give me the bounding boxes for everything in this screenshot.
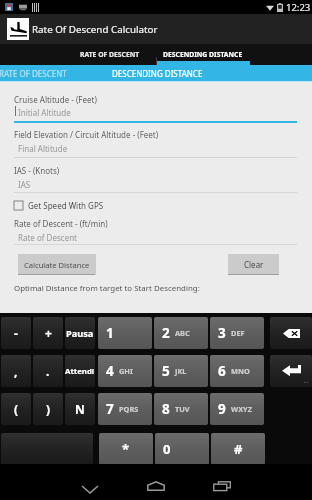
staticText: MNO bbox=[231, 366, 250, 376]
staticText: RATE OF DESCENT bbox=[80, 50, 140, 59]
staticText: Rate Of Descend Calculator bbox=[32, 23, 158, 36]
button[interactable] bbox=[14, 140, 297, 159]
staticText: # bbox=[234, 440, 243, 458]
staticText: * bbox=[122, 440, 130, 458]
button[interactable]: DESCENDING DISTANCE bbox=[112, 68, 203, 79]
button[interactable]: RATE OF DESCENT bbox=[63, 44, 156, 65]
staticText: Calculate Distance bbox=[24, 260, 90, 270]
staticText: 12:23 bbox=[286, 1, 311, 14]
staticText: ABC bbox=[175, 328, 190, 338]
staticText: TUV bbox=[175, 404, 190, 414]
staticText: 5 bbox=[162, 362, 170, 380]
staticText: Pausa bbox=[66, 327, 94, 340]
button[interactable]: 7 bbox=[98, 393, 152, 425]
button[interactable]: Pausa bbox=[65, 317, 95, 349]
button[interactable]: N bbox=[65, 393, 95, 425]
button[interactable]: Attendi bbox=[65, 355, 95, 387]
staticText: - bbox=[14, 325, 18, 341]
staticText: Optimal Distance from target to Start De… bbox=[14, 283, 200, 294]
staticText: Rate of Descent bbox=[18, 232, 77, 243]
button[interactable]: 1 bbox=[98, 317, 152, 349]
staticText: PQRS bbox=[119, 404, 139, 414]
button[interactable]: ( bbox=[1, 393, 31, 425]
staticText: 7 bbox=[106, 400, 114, 418]
button[interactable]: 8 bbox=[154, 393, 208, 425]
staticText: Initial Altitude bbox=[18, 107, 71, 118]
staticText: + bbox=[45, 325, 52, 341]
button[interactable]: Calculate Distance bbox=[18, 254, 96, 275]
staticText: DEF bbox=[231, 328, 245, 338]
button[interactable]: Symbols bbox=[1, 433, 93, 465]
staticText: 9 bbox=[218, 400, 226, 418]
staticText: 0 bbox=[163, 440, 171, 458]
button[interactable]: Get Speed With GPS bbox=[14, 199, 104, 211]
staticText: JKL bbox=[175, 366, 187, 376]
button[interactable]: , bbox=[1, 355, 31, 387]
staticText: GHI bbox=[119, 366, 133, 376]
staticText: Field Elevation / Circuit Altitude - (Fe… bbox=[14, 129, 159, 140]
button[interactable]: Home bbox=[138, 464, 174, 500]
button[interactable]: RATE OF DESCENT bbox=[0, 68, 67, 79]
button[interactable]: Backspace bbox=[270, 317, 312, 349]
staticText: . bbox=[46, 363, 50, 379]
button[interactable]: Hide keyboard bbox=[72, 464, 108, 500]
staticText: ( bbox=[14, 401, 19, 417]
button[interactable]: 0 bbox=[155, 433, 209, 465]
button[interactable]: DESCENDING DISTANCE bbox=[156, 44, 250, 65]
button[interactable]: * bbox=[99, 433, 153, 465]
button[interactable]: 9 bbox=[210, 393, 264, 425]
staticText: ) bbox=[46, 401, 51, 417]
button[interactable]: Clear bbox=[228, 254, 279, 275]
button[interactable]: 6 bbox=[210, 355, 264, 387]
button[interactable] bbox=[14, 176, 297, 194]
staticText: Clear bbox=[244, 259, 264, 270]
staticText: N bbox=[75, 401, 85, 417]
button[interactable]: # bbox=[211, 433, 265, 465]
staticText: WXYZ bbox=[231, 404, 253, 414]
button[interactable] bbox=[14, 104, 297, 123]
button[interactable]: Rate Of Descend Calculator bbox=[0, 14, 312, 44]
button[interactable]: + bbox=[33, 317, 63, 349]
staticText: 4 bbox=[106, 362, 114, 380]
staticText: Cruise Altitude - (Feet) bbox=[14, 94, 97, 105]
staticText: ... bbox=[304, 378, 309, 385]
staticText: 1 bbox=[106, 324, 114, 342]
staticText: , bbox=[14, 363, 18, 379]
staticText: Get Speed With GPS bbox=[28, 200, 104, 211]
button[interactable]: - bbox=[1, 317, 31, 349]
button[interactable]: 5 bbox=[154, 355, 208, 387]
staticText: IAS - (Knots) bbox=[14, 165, 60, 176]
staticText: IAS bbox=[18, 179, 31, 190]
staticText: 2 bbox=[162, 324, 170, 342]
button[interactable]: 4 bbox=[98, 355, 152, 387]
button[interactable]: . bbox=[33, 355, 63, 387]
staticText: Attendi bbox=[65, 366, 95, 377]
button[interactable]: Recent apps bbox=[204, 464, 240, 500]
button[interactable]: ) bbox=[33, 393, 63, 425]
staticText: 6 bbox=[218, 362, 226, 380]
staticText: 3 bbox=[218, 324, 226, 342]
button[interactable] bbox=[14, 229, 297, 246]
button[interactable]: Enter bbox=[270, 355, 312, 387]
button[interactable]: 3 bbox=[210, 317, 264, 349]
staticText: Final Altitude bbox=[18, 143, 68, 154]
staticText: DESCENDING DISTANCE bbox=[163, 50, 243, 59]
staticText: Rate of Descent - (ft/min) bbox=[14, 218, 108, 229]
staticText: 8 bbox=[162, 400, 170, 418]
button[interactable]: 2 bbox=[154, 317, 208, 349]
